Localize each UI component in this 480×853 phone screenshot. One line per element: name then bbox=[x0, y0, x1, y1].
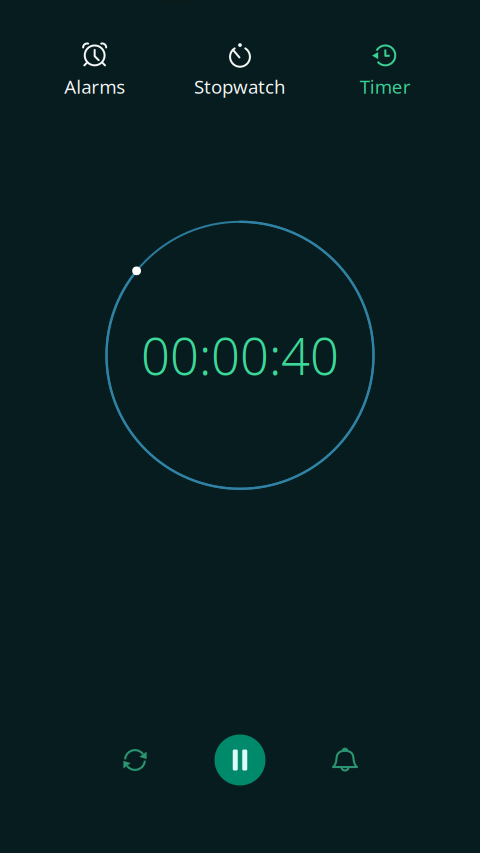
staticText: Stopwatch bbox=[194, 74, 286, 99]
staticText: Timer bbox=[360, 74, 411, 99]
button[interactable]: Timer bbox=[313, 36, 458, 103]
staticText: 00:00:40 bbox=[141, 322, 339, 389]
button[interactable]: Stopwatch bbox=[167, 36, 313, 103]
button[interactable]: Pause bbox=[204, 724, 276, 796]
button[interactable]: Reset bbox=[99, 724, 171, 796]
button[interactable]: Alert sound bbox=[309, 724, 381, 796]
button[interactable]: Alarms bbox=[22, 36, 167, 103]
staticText: Alarms bbox=[64, 74, 125, 99]
